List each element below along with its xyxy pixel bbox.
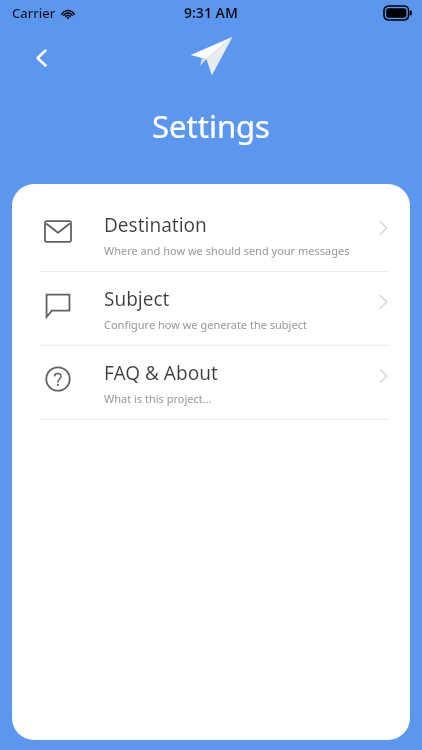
staticText: Carrier [12, 4, 56, 22]
staticText: 9:31 AM [184, 3, 238, 22]
staticText: FAQ & About [104, 360, 218, 386]
button[interactable]: FAQ & About [12, 346, 410, 419]
staticText: Destination [104, 212, 207, 238]
button[interactable]: Subject [12, 272, 410, 345]
staticText: Settings [152, 105, 270, 147]
button[interactable]: Destination [12, 198, 410, 271]
staticText: Where and how we should send your messag… [104, 243, 350, 258]
staticText: Subject [104, 286, 170, 312]
button[interactable]: Back [20, 36, 64, 80]
staticText: What is this project... [104, 391, 212, 406]
staticText: Configure how we generate the subject [104, 317, 307, 332]
